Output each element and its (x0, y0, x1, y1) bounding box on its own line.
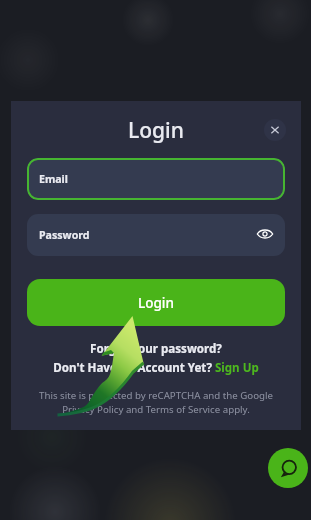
button[interactable]: Forgot your password? (11, 341, 301, 357)
button[interactable]: Chat (268, 448, 308, 488)
button[interactable]: Show password (257, 226, 273, 242)
button[interactable]: Login (27, 279, 285, 326)
staticText: Email (39, 172, 68, 186)
staticText: Login (138, 294, 174, 312)
staticText: This site is protected by reCAPTCHA and … (17, 389, 295, 415)
staticText: Login (128, 116, 184, 145)
button[interactable]: Email (27, 158, 285, 200)
button[interactable]: Close (264, 119, 286, 141)
button[interactable]: Don't Have an Account Yet? Sign Up (11, 360, 301, 376)
staticText: Password (39, 228, 90, 242)
button[interactable]: Password (27, 214, 285, 256)
